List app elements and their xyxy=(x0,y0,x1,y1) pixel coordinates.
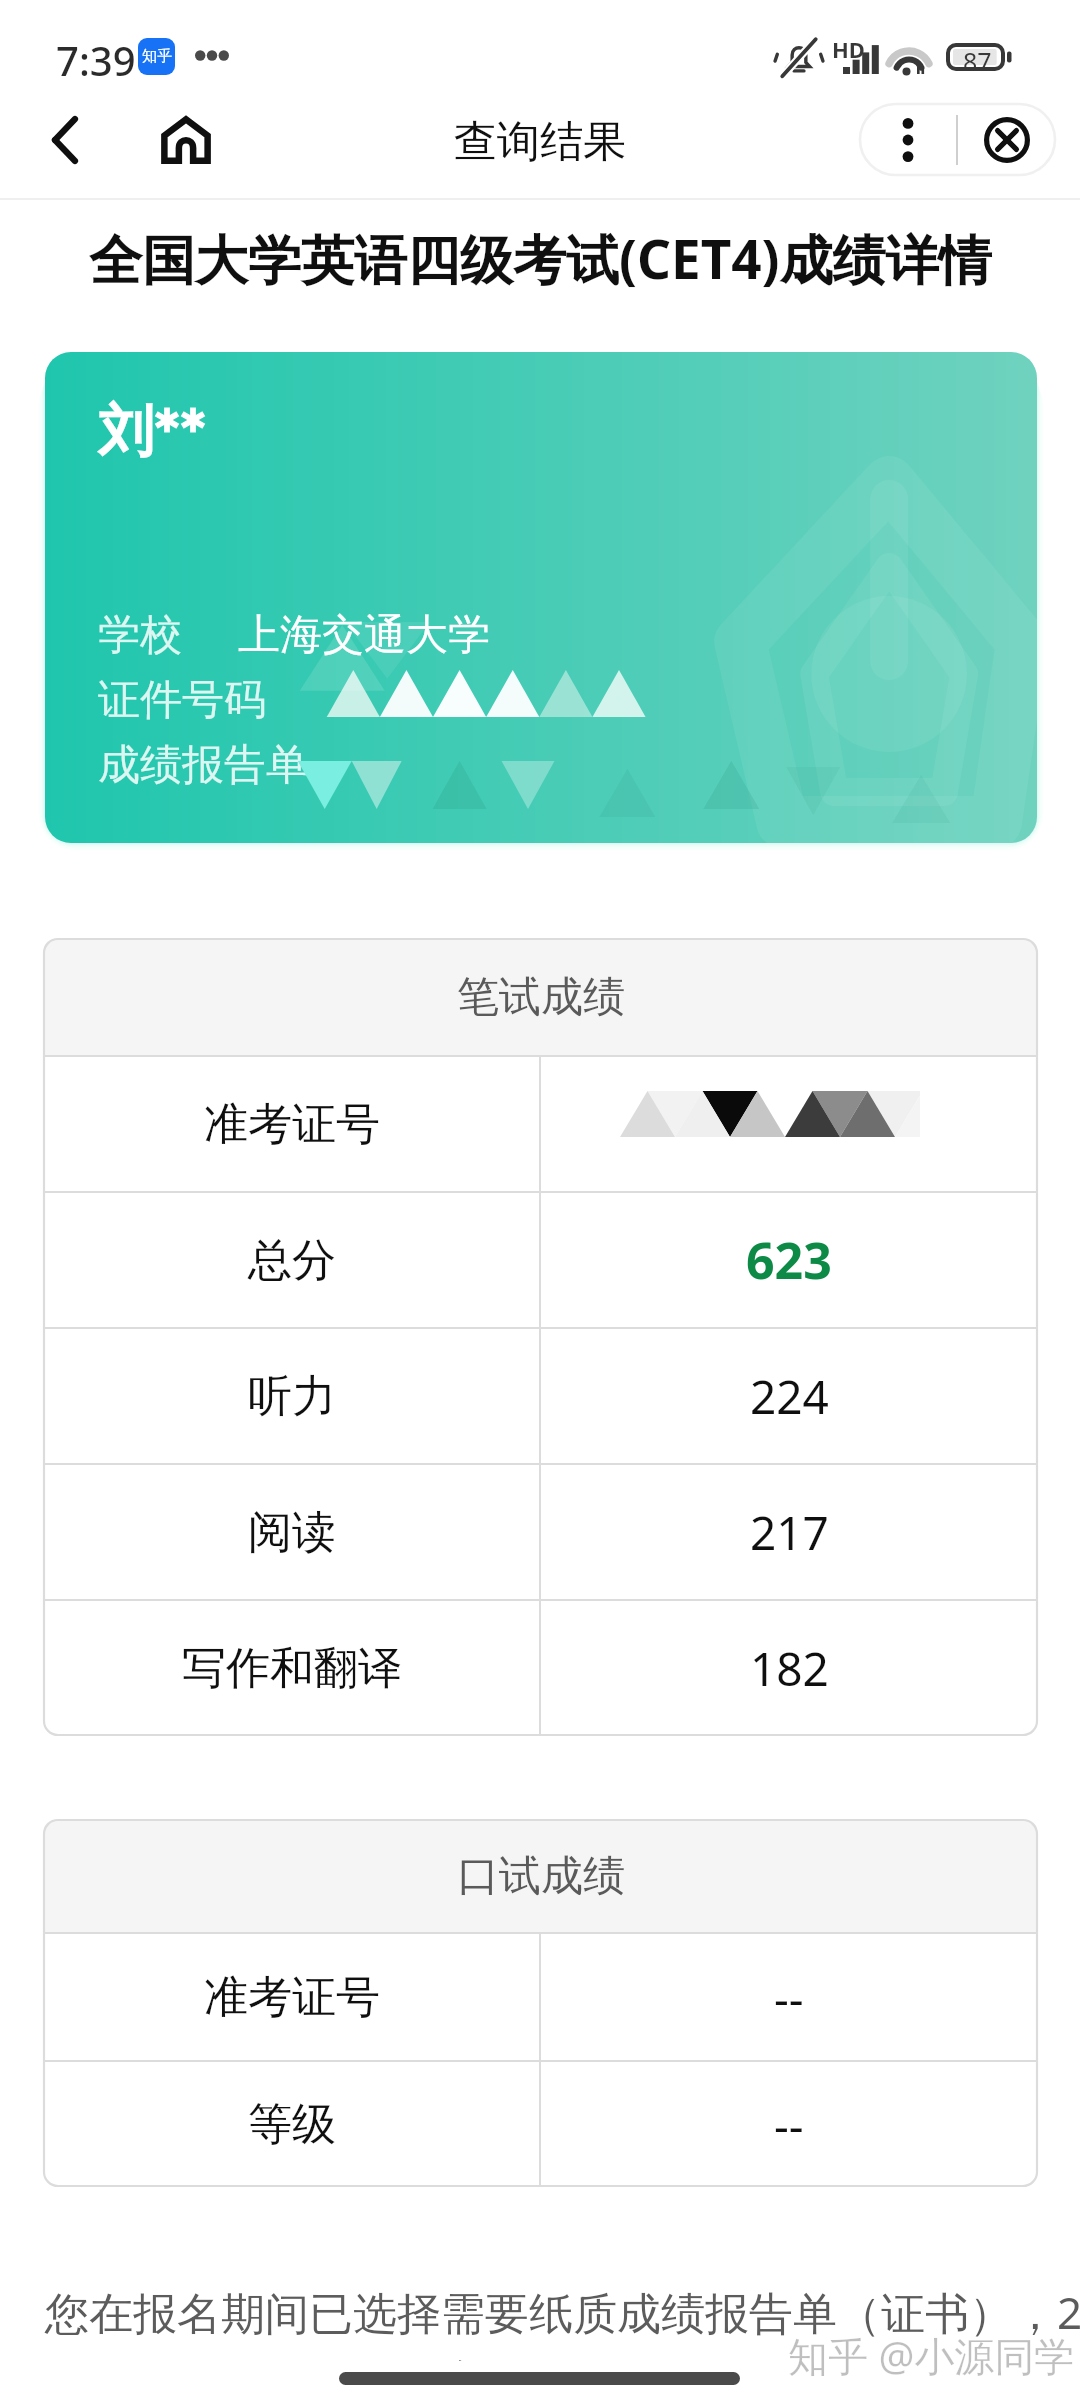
staticText: 知乎 xyxy=(142,47,172,66)
staticText: 听力 xyxy=(248,1369,336,1424)
staticText: 查询结果 xyxy=(454,115,626,169)
staticText: 623 xyxy=(746,1226,832,1294)
staticText: 224 xyxy=(750,1365,829,1428)
staticText: 87 xyxy=(963,44,992,78)
staticText: 准考证号 xyxy=(204,1970,380,2025)
staticText: -- xyxy=(774,1966,804,2029)
staticText: 成绩报告单 xyxy=(98,739,308,792)
button[interactable]: Close xyxy=(958,104,1055,175)
button[interactable]: Back xyxy=(26,101,104,179)
staticText: 182 xyxy=(750,1637,829,1700)
staticText: 准考证号 xyxy=(204,1097,380,1152)
staticText: 217 xyxy=(750,1501,829,1564)
staticText: 笔试成绩 xyxy=(457,971,625,1024)
staticText: 7:39 xyxy=(56,33,136,87)
staticText: 全国大学英语四级考试(CET4)成绩详情 xyxy=(89,222,992,294)
button[interactable]: Home xyxy=(145,99,227,181)
staticText: -- xyxy=(774,2093,804,2156)
staticText: 等级 xyxy=(248,2097,336,2152)
staticText: 阅读 xyxy=(248,1505,336,1560)
staticText: 上海交通大学 xyxy=(238,609,490,662)
staticText: 知乎 @小源同学 xyxy=(788,2328,1075,2383)
staticText: 口试成绩 xyxy=(457,1850,625,1903)
staticText: 证件号码 xyxy=(98,674,266,727)
button[interactable]: More options xyxy=(860,104,956,175)
staticText: 学校 xyxy=(98,609,182,662)
staticText: HD xyxy=(832,34,865,64)
staticText: 总分 xyxy=(248,1233,336,1288)
staticText: 月上旬起可在中国教育考试网申请纸质成绩单 xyxy=(45,2356,925,2361)
staticText: 刘 xyxy=(98,396,154,467)
staticText: 写作和翻译 xyxy=(182,1641,402,1696)
staticText: 您在报名期间已选择需要纸质成绩报告单（证书），2 xyxy=(45,2282,1080,2342)
